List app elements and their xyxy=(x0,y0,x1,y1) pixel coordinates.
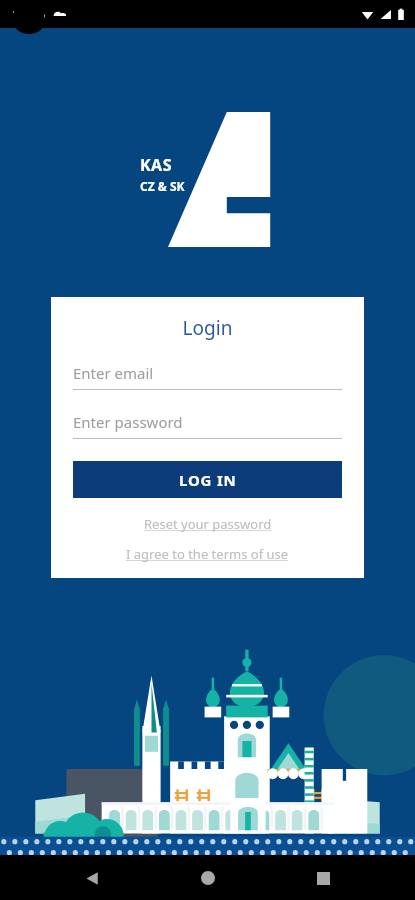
staticText: CZ & SK xyxy=(140,178,185,194)
button[interactable]: Recent apps xyxy=(303,858,343,898)
staticText: 11:05 xyxy=(12,5,46,23)
button[interactable]: Home xyxy=(188,858,228,898)
button[interactable]: LOG IN xyxy=(73,461,342,498)
staticText: Reset your password xyxy=(144,515,272,533)
staticText: KAS xyxy=(140,154,173,176)
button[interactable]: Reset your password xyxy=(73,515,342,533)
staticText: LOG IN xyxy=(179,470,237,490)
button[interactable]: Enter password xyxy=(73,412,342,439)
staticText: Enter password xyxy=(73,412,183,432)
staticText: Enter email xyxy=(73,363,154,383)
button[interactable]: Enter email xyxy=(73,363,342,390)
button[interactable]: I agree to the terms of use xyxy=(73,545,342,563)
staticText: Login xyxy=(73,315,342,341)
staticText: I agree to the terms of use xyxy=(126,545,289,563)
button[interactable]: Back xyxy=(72,858,112,898)
